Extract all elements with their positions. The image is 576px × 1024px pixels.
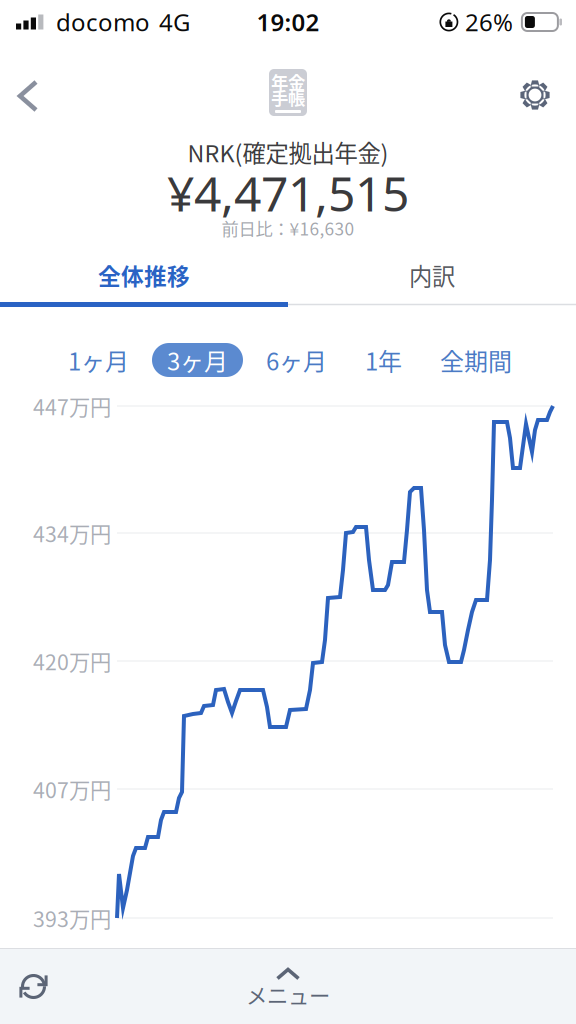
staticText: 3ヶ月: [167, 343, 228, 377]
staticText: 内訳: [409, 258, 455, 292]
button[interactable]: 1年: [350, 343, 417, 377]
staticText: docomo: [56, 6, 150, 38]
button[interactable]: 内訳: [288, 252, 576, 298]
button[interactable]: Settings: [506, 50, 576, 114]
staticText: 1年: [365, 343, 402, 377]
staticText: 6ヶ月: [266, 343, 327, 377]
button[interactable]: 3ヶ月: [152, 343, 243, 377]
button[interactable]: メニュー: [224, 958, 352, 1014]
button[interactable]: 全体推移: [0, 252, 288, 298]
staticText: 434万円: [33, 518, 111, 548]
button[interactable]: 1ヶ月: [53, 343, 144, 377]
staticText: 全体推移: [98, 259, 190, 291]
button[interactable]: 全期間: [425, 343, 527, 377]
staticText: 年金: [271, 69, 305, 94]
staticText: ¥4,471,515: [167, 161, 409, 225]
staticText: 447万円: [33, 391, 111, 421]
staticText: 前日比：¥16,630: [221, 215, 354, 241]
staticText: メニュー: [246, 979, 330, 1010]
staticText: 19:02: [256, 6, 319, 38]
staticText: 4G: [159, 6, 190, 38]
staticText: 420万円: [33, 646, 111, 676]
staticText: 全期間: [440, 343, 512, 377]
staticText: NRK(確定拠出年金): [187, 135, 388, 169]
staticText: 1ヶ月: [68, 343, 129, 377]
button[interactable]: Back: [0, 50, 50, 114]
staticText: 手帳: [271, 85, 305, 110]
button[interactable]: Refresh: [0, 958, 67, 1015]
button[interactable]: 6ヶ月: [251, 343, 342, 377]
staticText: 393万円: [33, 903, 111, 933]
staticText: 26%: [465, 6, 513, 38]
staticText: 407万円: [33, 774, 111, 804]
